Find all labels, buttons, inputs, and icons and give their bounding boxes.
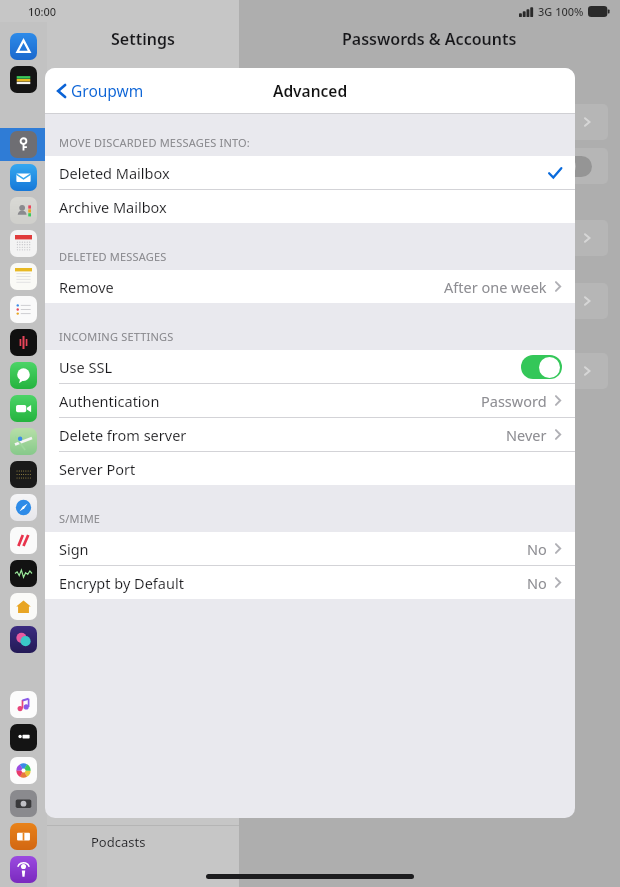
- button[interactable]: N: [0, 260, 47, 293]
- staticText: Encrypt by Default: [59, 573, 527, 593]
- button[interactable]: Delete from server: [45, 418, 575, 451]
- button[interactable]: Sign: [45, 532, 575, 565]
- staticText: After one week: [444, 277, 547, 297]
- staticText: Authentication: [59, 391, 481, 411]
- button[interactable]: Archive Mailbox: [45, 190, 575, 223]
- staticText: No: [527, 573, 547, 593]
- button[interactable]: W: [0, 63, 47, 96]
- staticText: Sign: [59, 539, 527, 559]
- button[interactable]: Ns: [0, 524, 47, 557]
- staticText: Passwords & Accounts: [342, 28, 517, 50]
- staticText: INCOMING SETTINGS: [59, 329, 174, 344]
- button[interactable]: Groupwm: [55, 68, 144, 113]
- button[interactable]: Server Port: [45, 452, 575, 485]
- button[interactable]: Remove: [45, 270, 575, 303]
- staticText: Server Port: [59, 459, 562, 479]
- staticText: Never: [506, 425, 547, 445]
- staticText: Groupwm: [71, 80, 144, 101]
- button[interactable]: St: [0, 557, 47, 590]
- button[interactable]: D: [0, 227, 47, 260]
- button[interactable]: Use SSL: [521, 355, 562, 379]
- button[interactable]: Encrypt by Default: [45, 566, 575, 599]
- button[interactable]: Cm: [0, 787, 47, 820]
- staticText: 3G 100%: [538, 4, 584, 19]
- button[interactable]: Deleted Mailbox: [45, 156, 575, 189]
- button[interactable]: Authentication: [45, 384, 575, 417]
- button[interactable]: Sf: [0, 491, 47, 524]
- button[interactable]: K: [0, 128, 47, 161]
- button[interactable]: Ph: [0, 754, 47, 787]
- button[interactable]: M: [0, 161, 47, 194]
- button[interactable]: C: [0, 194, 47, 227]
- button[interactable]: Books: [47, 793, 239, 825]
- staticText: S/MIME: [59, 511, 101, 526]
- button[interactable]: Nw: [0, 458, 47, 491]
- button[interactable]: Use SSL: [45, 350, 575, 383]
- button[interactable]: Pd: [0, 853, 47, 886]
- staticText: MOVE DISCARDED MESSAGES INTO:: [59, 135, 251, 150]
- staticText: Settings: [111, 28, 175, 50]
- button[interactable]: Sc: [0, 623, 47, 656]
- staticText: Archive Mailbox: [59, 197, 562, 217]
- button[interactable]: V: [0, 326, 47, 359]
- button[interactable]: Tv: [0, 721, 47, 754]
- button[interactable]: Mu: [0, 688, 47, 721]
- staticText: Remove: [59, 277, 444, 297]
- staticText: Password: [481, 391, 547, 411]
- staticText: Use SSL: [59, 357, 521, 377]
- button[interactable]: Hm: [0, 590, 47, 623]
- staticText: 10:00: [28, 4, 57, 19]
- button[interactable]: Bk: [0, 820, 47, 853]
- staticText: DELETED MESSAGES: [59, 249, 167, 264]
- button[interactable]: Mp: [0, 425, 47, 458]
- staticText: Podcasts: [91, 833, 146, 851]
- button[interactable]: A: [0, 30, 47, 63]
- staticText: Deleted Mailbox: [59, 163, 548, 183]
- staticText: No: [527, 539, 547, 559]
- button[interactable]: Podcasts: [47, 826, 239, 858]
- staticText: Advanced: [273, 80, 348, 101]
- button[interactable]: S: [0, 359, 47, 392]
- staticText: Delete from server: [59, 425, 506, 445]
- button[interactable]: R: [0, 293, 47, 326]
- button[interactable]: F: [0, 392, 47, 425]
